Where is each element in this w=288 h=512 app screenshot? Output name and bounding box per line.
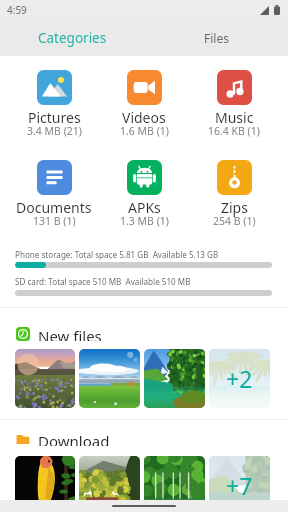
button[interactable] [79,456,140,512]
staticText: Files [204,30,229,46]
button[interactable]: New files [0,326,288,341]
button[interactable] [144,456,205,512]
staticText: 1.6 MB (1) [120,124,169,138]
staticText: Zips [221,198,248,217]
staticText: APKs [128,198,161,217]
button[interactable]: Home [112,505,176,507]
button[interactable] [144,349,205,408]
button[interactable] [15,349,75,408]
button[interactable]: +2 [209,349,270,408]
button[interactable]: Videos [99,70,189,141]
staticText: SD card: Total space 510 MB Available 51… [15,276,191,287]
staticText: New files [38,326,102,341]
staticText: +2 [226,363,253,394]
button[interactable]: Documents [9,160,99,231]
staticText: Documents [16,198,92,217]
button[interactable]: Pictures [9,70,99,141]
staticText: +7 [226,470,253,501]
button[interactable]: Download [0,431,288,446]
staticText: 3.4 MB (21) [27,124,82,138]
button[interactable]: Music [189,70,279,141]
staticText: 16.4 KB (1) [208,124,260,138]
button[interactable]: Files [144,20,288,56]
staticText: 1.3 MB (1) [120,214,169,228]
staticText: Phone storage: Total space 5.81 GB Avail… [15,249,219,260]
staticText: 131 B (1) [33,214,76,228]
staticText: 254 B (1) [213,214,256,228]
staticText: Videos [122,108,166,127]
staticText: Pictures [28,108,81,127]
button[interactable] [79,349,140,408]
staticText: Music [215,108,254,127]
staticText: Download [38,431,110,446]
button[interactable]: APKs [99,160,189,231]
staticText: Categories [38,29,107,47]
staticText: 4:59 [7,3,27,17]
button[interactable] [15,456,75,512]
button[interactable]: Zips [189,160,279,231]
button[interactable]: Categories [0,20,144,56]
button[interactable]: +7 [209,456,270,512]
